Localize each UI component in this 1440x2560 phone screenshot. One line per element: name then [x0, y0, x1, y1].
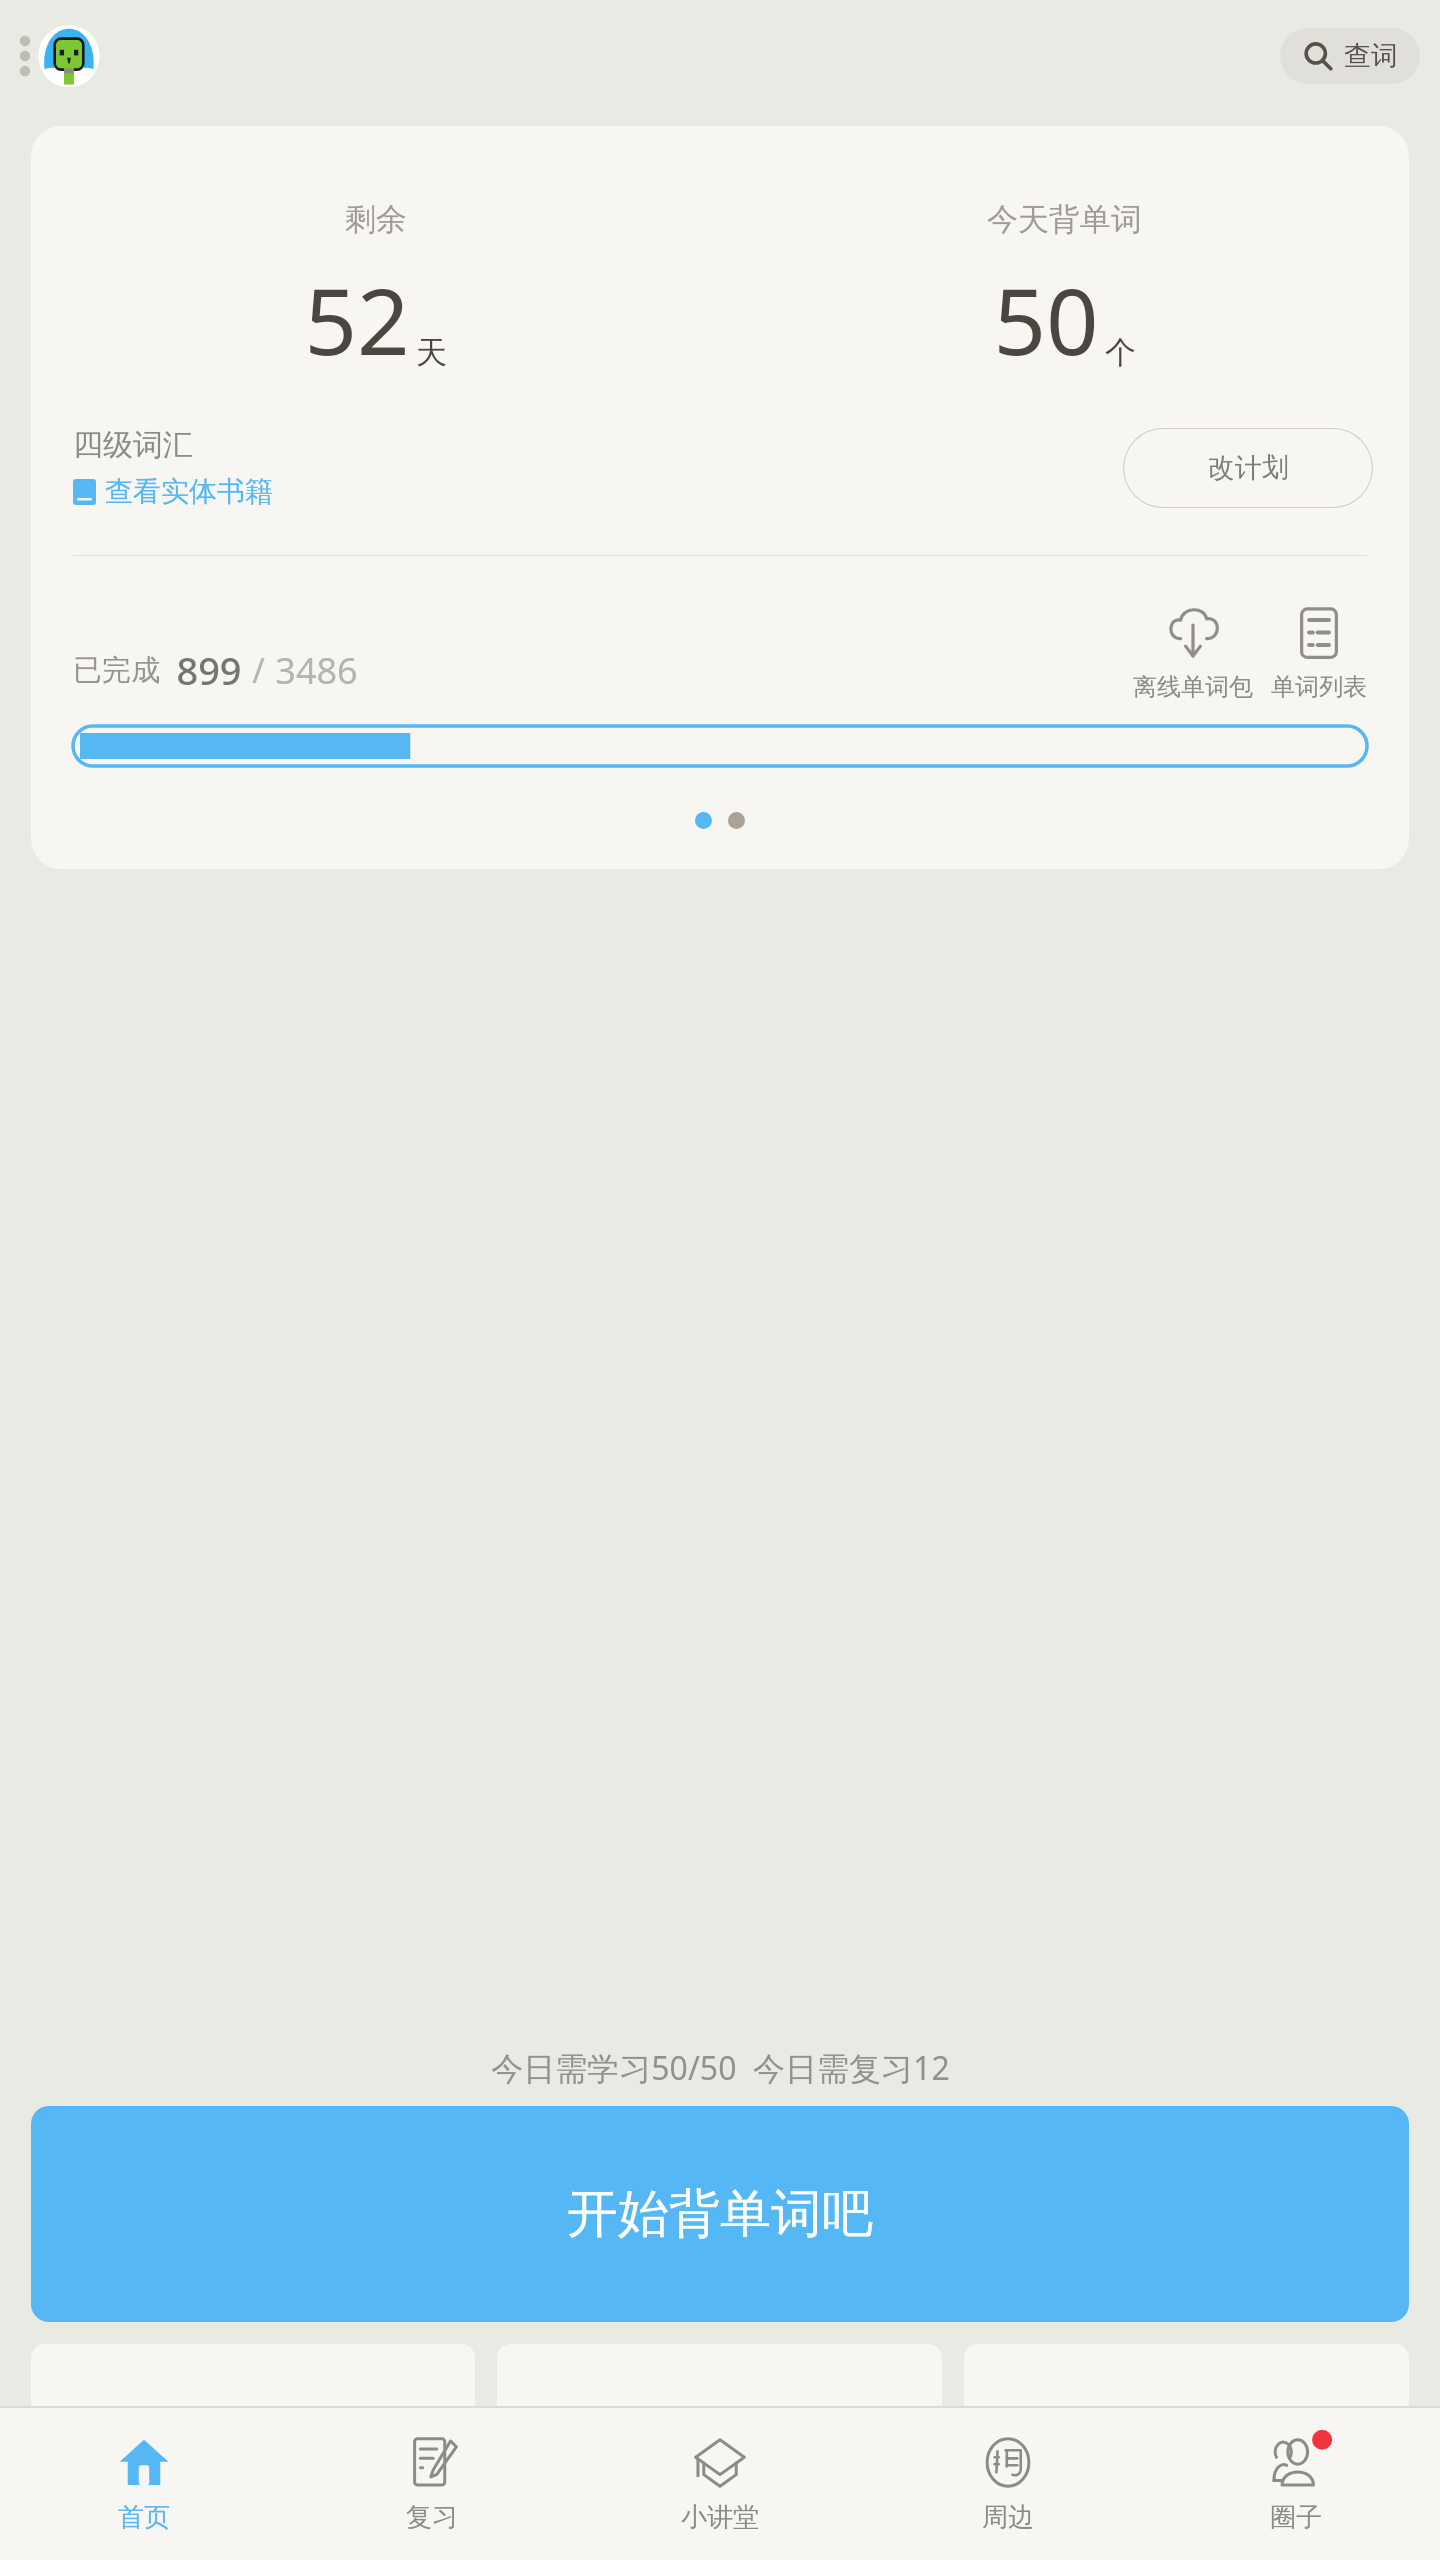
- staticText: 3486: [275, 646, 358, 695]
- staticText: 改计划: [1208, 451, 1289, 485]
- staticText: 开始背单词吧: [567, 2182, 873, 2246]
- staticText: 剩余: [345, 200, 407, 239]
- button[interactable]: Profile: [38, 25, 100, 87]
- staticText: 周边: [982, 2501, 1034, 2534]
- staticText: 已完成: [73, 652, 160, 689]
- staticText: 50: [993, 257, 1099, 382]
- button[interactable]: 查看实体书籍: [73, 474, 273, 509]
- button[interactable]: 首页: [0, 2408, 288, 2560]
- button[interactable]: 单词电台: [31, 2344, 475, 2524]
- staticText: 天: [416, 333, 447, 372]
- button[interactable]: 爱阅读: [964, 2344, 1409, 2524]
- button[interactable]: 改计划: [1123, 428, 1373, 508]
- staticText: 复习: [406, 2501, 458, 2534]
- button[interactable]: 开始背单词吧: [31, 2106, 1409, 2322]
- staticText: 查看实体书籍: [105, 474, 273, 509]
- staticText: 52: [304, 257, 410, 382]
- staticText: 单词TV: [663, 2410, 777, 2459]
- button[interactable]: 圈子: [1152, 2408, 1440, 2560]
- staticText: 今日需学习50/50 今日需复习12: [491, 2046, 950, 2090]
- staticText: /: [252, 647, 265, 693]
- button[interactable]: 小讲堂: [576, 2408, 864, 2560]
- button[interactable]: 查词: [1280, 28, 1420, 84]
- staticText: 圈子: [1270, 2501, 1322, 2534]
- staticText: 899: [176, 644, 242, 696]
- button[interactable]: 周边: [864, 2408, 1152, 2560]
- staticText: 离线单词包: [1133, 672, 1253, 702]
- button[interactable]: 离线单词包: [1131, 604, 1255, 702]
- staticText: 查词: [1344, 39, 1398, 73]
- staticText: 四级词汇: [73, 426, 193, 464]
- staticText: 个: [1105, 333, 1136, 372]
- staticText: 小讲堂: [681, 2501, 759, 2534]
- staticText: 首页: [118, 2501, 170, 2534]
- staticText: 单词列表: [1271, 672, 1367, 702]
- button[interactable]: 复习: [288, 2408, 576, 2560]
- button[interactable]: 单词TV: [497, 2344, 942, 2524]
- button[interactable]: 单词列表: [1269, 604, 1369, 702]
- staticText: 今天背单词: [987, 200, 1142, 239]
